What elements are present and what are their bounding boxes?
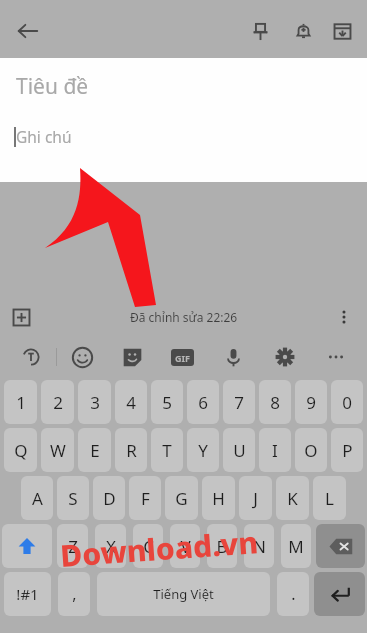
- staticText: M: [288, 535, 304, 558]
- button[interactable]: Tiếng Việt: [97, 572, 270, 616]
- button[interactable]: H: [202, 476, 235, 520]
- staticText: R: [126, 439, 137, 462]
- staticText: 3: [90, 391, 100, 414]
- button[interactable]: Archive: [322, 11, 362, 51]
- staticText: G: [175, 487, 188, 510]
- staticText: 0: [342, 391, 352, 414]
- button[interactable]: S: [57, 476, 89, 520]
- button[interactable]: Voice input: [208, 336, 259, 378]
- button[interactable]: 3: [78, 380, 111, 424]
- button[interactable]: 4: [115, 380, 147, 424]
- button[interactable]: Settings: [259, 336, 310, 378]
- staticText: A: [32, 487, 43, 510]
- staticText: W: [50, 439, 66, 462]
- button[interactable]: Ghi chú: [0, 114, 367, 158]
- button[interactable]: M: [281, 524, 311, 568]
- button[interactable]: 8: [259, 380, 291, 424]
- staticText: 6: [198, 391, 208, 414]
- button[interactable]: 2: [41, 380, 74, 424]
- button[interactable]: Emoji: [57, 336, 107, 378]
- staticText: 7: [234, 391, 244, 414]
- button[interactable]: Add: [4, 300, 38, 334]
- staticText: T: [162, 439, 172, 462]
- staticText: 5: [162, 391, 172, 414]
- button[interactable]: Q: [4, 428, 37, 472]
- staticText: Đã chỉnh sửa 22:26: [130, 309, 238, 325]
- button[interactable]: Z: [57, 524, 88, 568]
- staticText: L: [325, 487, 334, 510]
- staticText: 4: [126, 391, 136, 414]
- staticText: Ghi chú: [16, 126, 72, 147]
- button[interactable]: C: [133, 524, 163, 568]
- button[interactable]: More: [310, 336, 361, 378]
- button[interactable]: J: [239, 476, 272, 520]
- button[interactable]: Pin: [240, 11, 280, 51]
- button[interactable]: N: [244, 524, 274, 568]
- staticText: B: [216, 535, 228, 558]
- staticText: V: [180, 535, 191, 558]
- button[interactable]: R: [115, 428, 147, 472]
- button[interactable]: GIF: [157, 336, 208, 378]
- staticText: 1: [16, 391, 26, 414]
- button[interactable]: O: [295, 428, 327, 472]
- staticText: U: [233, 439, 246, 462]
- button[interactable]: V: [170, 524, 200, 568]
- staticText: Y: [198, 439, 208, 462]
- button[interactable]: A: [21, 476, 53, 520]
- staticText: Z: [68, 535, 78, 558]
- staticText: .: [291, 583, 296, 605]
- staticText: GIF: [175, 352, 190, 364]
- button[interactable]: More options: [327, 300, 361, 334]
- staticText: 8: [270, 391, 280, 414]
- button[interactable]: 0: [331, 380, 363, 424]
- button[interactable]: D: [93, 476, 125, 520]
- button[interactable]: Tiêu đề: [0, 58, 367, 114]
- staticText: K: [287, 487, 298, 510]
- button[interactable]: 7: [223, 380, 255, 424]
- button[interactable]: 5: [151, 380, 183, 424]
- staticText: C: [143, 535, 154, 558]
- button[interactable]: I: [259, 428, 291, 472]
- staticText: Q: [14, 439, 28, 462]
- button[interactable]: Reminder: [283, 11, 323, 51]
- staticText: J: [253, 487, 258, 510]
- button[interactable]: K: [276, 476, 309, 520]
- staticText: Tiếng Việt: [153, 585, 214, 603]
- button[interactable]: Enter: [314, 572, 365, 616]
- staticText: Tiêu đề: [16, 72, 89, 101]
- button[interactable]: F: [129, 476, 161, 520]
- staticText: E: [90, 439, 100, 462]
- button[interactable]: L: [313, 476, 346, 520]
- button[interactable]: !#1: [4, 572, 51, 616]
- button[interactable]: ,: [58, 572, 90, 616]
- button[interactable]: Back: [8, 11, 48, 51]
- staticText: N: [253, 535, 266, 558]
- button[interactable]: 6: [187, 380, 219, 424]
- button[interactable]: T: [151, 428, 183, 472]
- button[interactable]: translate: [6, 336, 56, 378]
- staticText: P: [342, 439, 353, 462]
- button[interactable]: Y: [187, 428, 219, 472]
- staticText: ,: [72, 583, 77, 605]
- button[interactable]: U: [223, 428, 255, 472]
- button[interactable]: B: [207, 524, 237, 568]
- staticText: F: [141, 487, 150, 510]
- button[interactable]: Backspace: [316, 524, 365, 568]
- staticText: S: [68, 487, 78, 510]
- button[interactable]: Stickers: [107, 336, 157, 378]
- button[interactable]: 1: [4, 380, 37, 424]
- staticText: I: [272, 439, 278, 462]
- button[interactable]: X: [95, 524, 126, 568]
- button[interactable]: P: [331, 428, 363, 472]
- button[interactable]: 9: [295, 380, 327, 424]
- button[interactable]: G: [165, 476, 198, 520]
- staticText: 9: [306, 391, 316, 414]
- button[interactable]: Shift: [2, 524, 52, 568]
- button[interactable]: .: [277, 572, 309, 616]
- staticText: O: [304, 439, 318, 462]
- staticText: 2: [53, 391, 63, 414]
- staticText: Download.vn: [59, 521, 260, 576]
- button[interactable]: W: [41, 428, 74, 472]
- button[interactable]: E: [78, 428, 111, 472]
- staticText: X: [106, 535, 116, 558]
